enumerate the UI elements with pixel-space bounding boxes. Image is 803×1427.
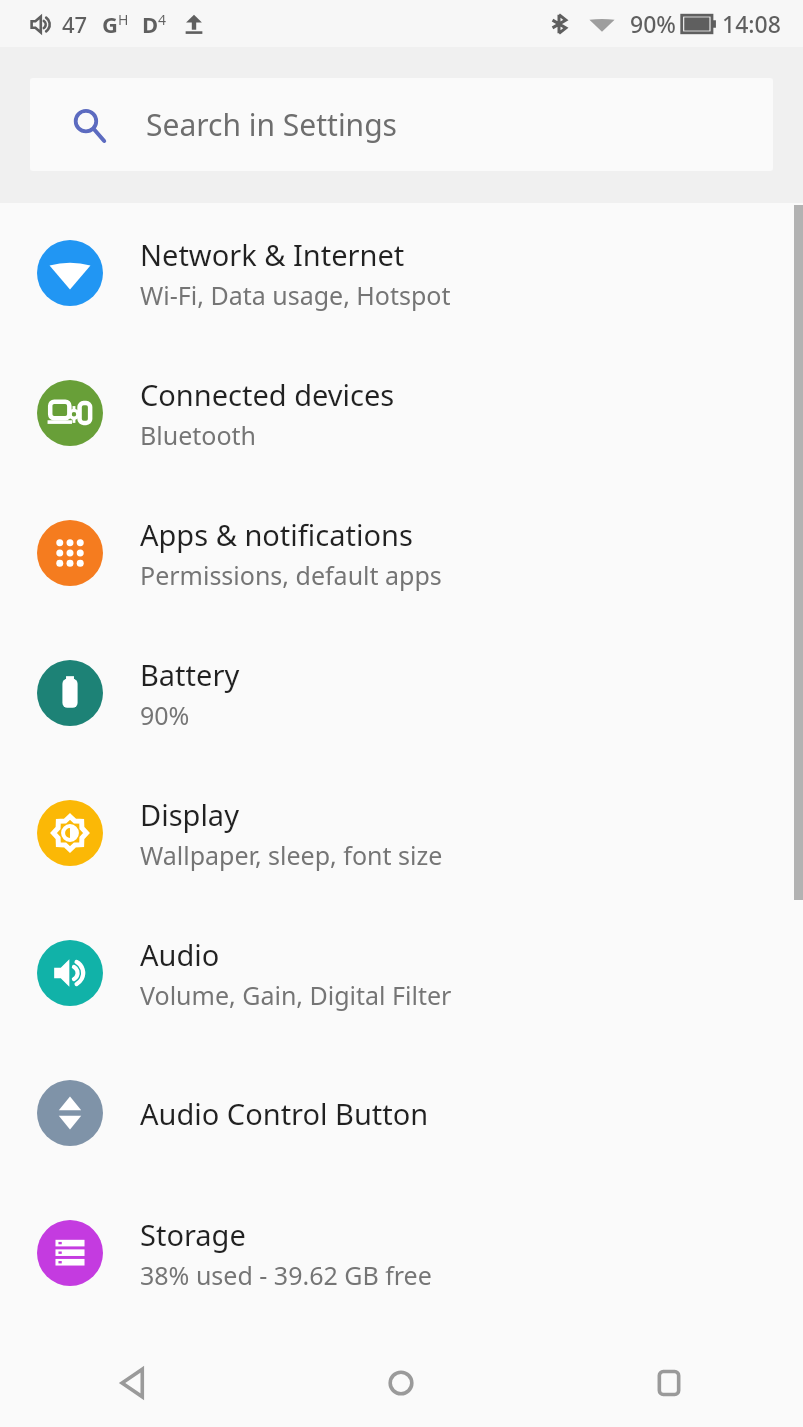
- staticText: 90%: [140, 698, 190, 732]
- staticText: Wi-Fi, Data usage, Hotspot: [140, 278, 451, 312]
- staticText: Storage: [140, 1215, 246, 1254]
- button[interactable]: Connected devices: [0, 343, 803, 483]
- staticText: Connected devices: [140, 375, 395, 414]
- staticText: Display: [140, 795, 239, 834]
- button[interactable]: Recents: [535, 1339, 803, 1427]
- button[interactable]: Home: [267, 1339, 535, 1427]
- staticText: Audio Control Button: [140, 1094, 429, 1133]
- button[interactable]: Battery: [0, 623, 803, 763]
- button[interactable]: Audio Control Button: [0, 1043, 803, 1183]
- staticText: D4: [142, 9, 167, 39]
- button[interactable]: Audio: [0, 903, 803, 1043]
- staticText: 47: [62, 9, 88, 39]
- staticText: Bluetooth: [140, 418, 257, 452]
- button[interactable]: Network & Internet: [0, 203, 803, 343]
- staticText: Apps & notifications: [140, 515, 413, 554]
- staticText: GH: [102, 9, 129, 39]
- staticText: Wallpaper, sleep, font size: [140, 838, 443, 872]
- button[interactable]: Apps & notifications: [0, 483, 803, 623]
- staticText: Battery: [140, 655, 240, 694]
- button[interactable]: Search in Settings: [30, 78, 773, 171]
- staticText: 38% used - 39.62 GB free: [140, 1258, 432, 1292]
- button[interactable]: Display: [0, 763, 803, 903]
- staticText: Permissions, default apps: [140, 558, 442, 592]
- staticText: Network & Internet: [140, 235, 405, 274]
- button[interactable]: Back: [0, 1339, 267, 1427]
- staticText: 90%: [630, 8, 676, 39]
- staticText: Search in Settings: [146, 104, 397, 145]
- staticText: 14:08: [722, 8, 781, 39]
- staticText: Audio: [140, 935, 220, 974]
- button[interactable]: Storage: [0, 1183, 803, 1323]
- staticText: Volume, Gain, Digital Filter: [140, 978, 452, 1012]
